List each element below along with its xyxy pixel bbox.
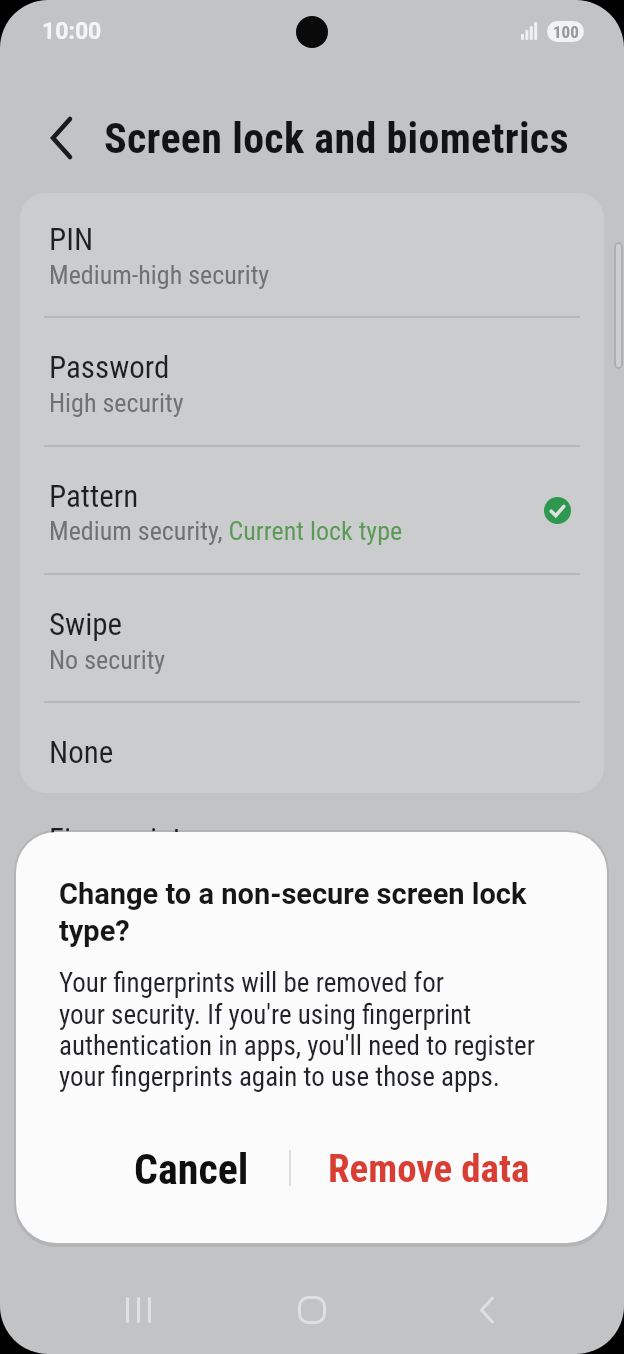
staticText: High security	[49, 388, 184, 418]
button[interactable]	[20, 702, 604, 793]
staticText: 100	[553, 22, 579, 42]
staticText: Medium security, Current lock type	[49, 516, 403, 546]
button[interactable]	[38, 110, 86, 166]
button[interactable]	[274, 1280, 350, 1340]
staticText: Password	[49, 349, 170, 385]
staticText: None	[49, 734, 114, 770]
staticText: Remove data	[328, 1146, 530, 1192]
button[interactable]	[20, 317, 604, 446]
button[interactable]: Cancel	[111, 1134, 271, 1204]
staticText: No security	[49, 645, 166, 675]
staticText: Change to a non-secure screen lock type?	[59, 877, 527, 948]
staticText: Screen lock and biometrics	[104, 114, 569, 163]
staticText: Swipe	[49, 606, 123, 642]
button[interactable]	[20, 574, 604, 702]
staticText: Your fingerprints will be removed for yo…	[59, 967, 535, 1092]
staticText: Pattern	[49, 478, 139, 514]
staticText: Fingerprints	[49, 821, 196, 857]
button[interactable]	[100, 1280, 176, 1340]
staticText: Medium-high security	[49, 260, 270, 290]
staticText: 10:00	[42, 18, 102, 45]
button[interactable]	[20, 446, 604, 574]
button[interactable]	[20, 193, 604, 317]
staticText: PIN	[49, 221, 94, 257]
staticText: Cancel	[134, 1145, 249, 1194]
button[interactable]: Remove data	[306, 1134, 551, 1204]
button[interactable]	[449, 1280, 525, 1340]
